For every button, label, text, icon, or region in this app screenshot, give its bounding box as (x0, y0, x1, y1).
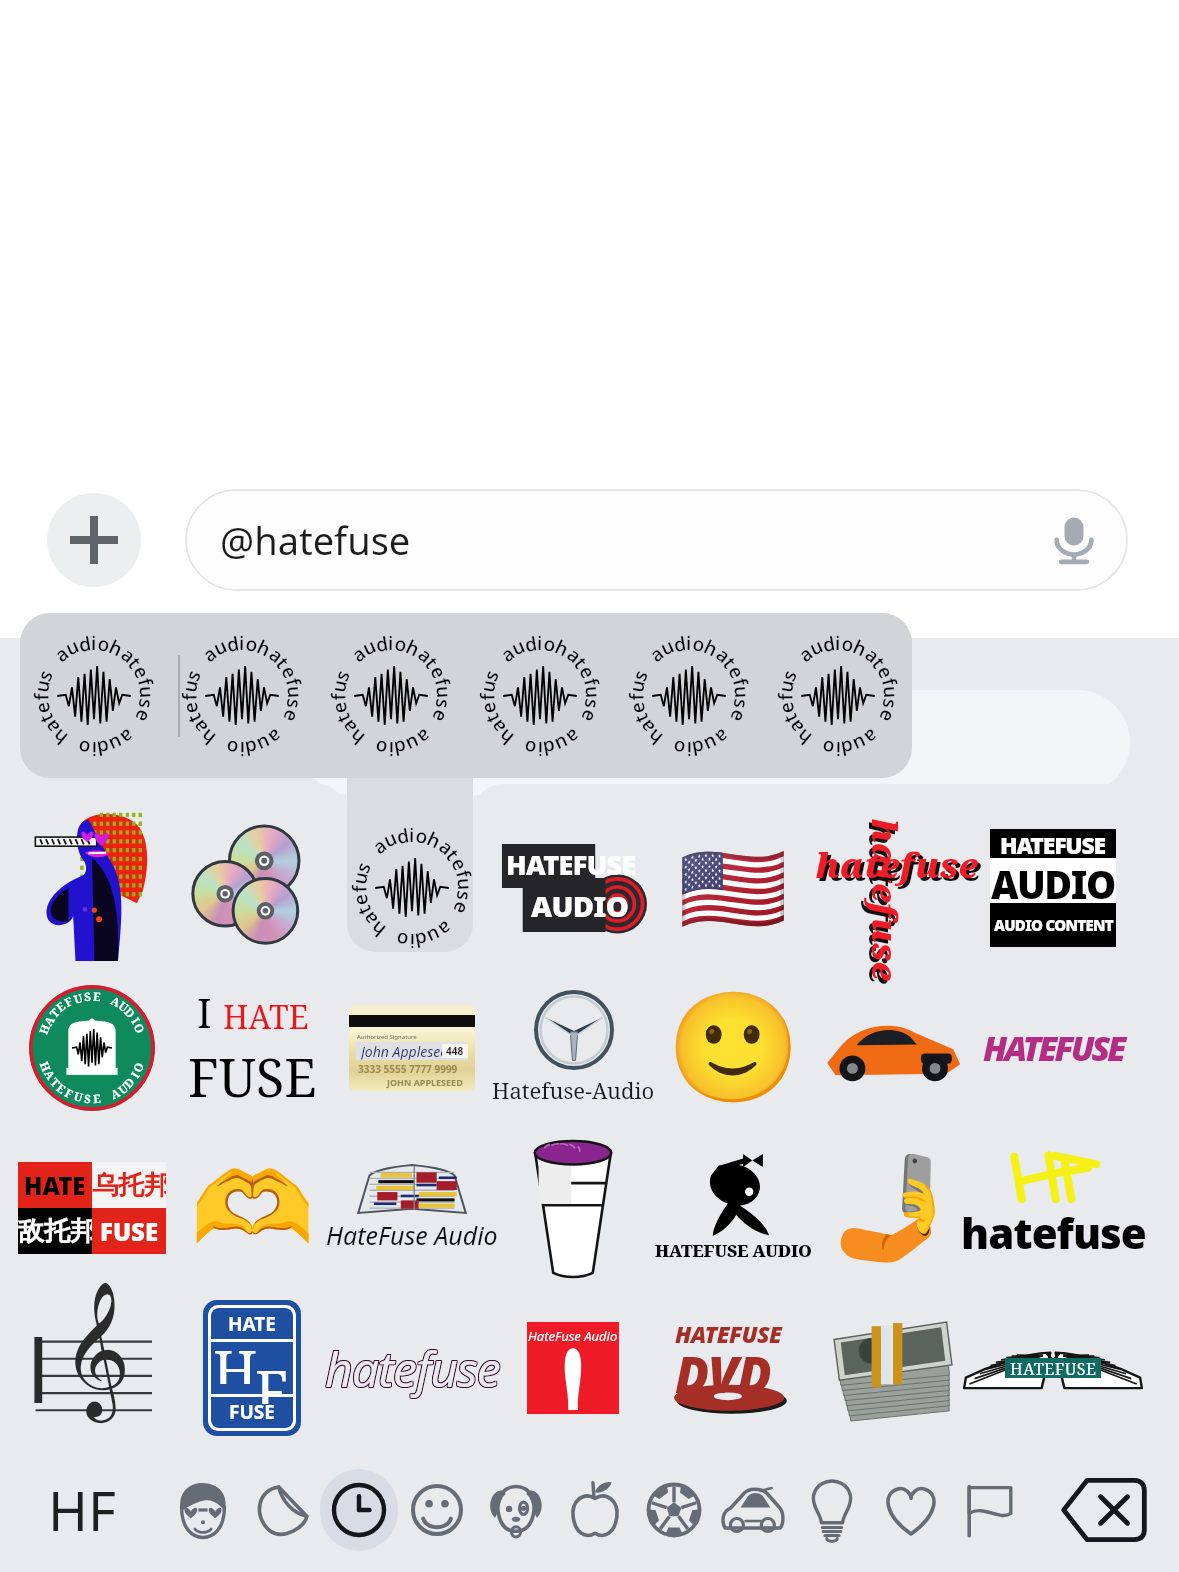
staticText: u (849, 730, 871, 758)
staticText: u (551, 730, 573, 758)
button[interactable]: Sticker (172, 968, 332, 1128)
staticText: f (28, 693, 54, 701)
button[interactable]: Sticker (12, 808, 172, 968)
button[interactable]: Recently used emoji (164, 1448, 242, 1572)
button[interactable]: Animals (476, 1448, 555, 1572)
button[interactable]: Shapes (242, 1448, 320, 1572)
staticText: 🙂 (666, 985, 801, 1112)
staticText: d (541, 734, 557, 762)
button[interactable]: Sticker (813, 1128, 973, 1288)
button[interactable]: Sticker (493, 1288, 653, 1448)
button[interactable]: Backspace (1029, 1448, 1179, 1572)
staticText: s (775, 665, 803, 685)
staticText: I (127, 1015, 144, 1027)
staticText: FUSE (229, 1399, 275, 1425)
staticText: hatefuse (324, 1336, 499, 1401)
staticText: h (105, 634, 127, 662)
staticText: o (96, 630, 112, 658)
button[interactable]: Sticker (973, 1128, 1133, 1288)
button[interactable]: Sticker (813, 808, 973, 968)
staticText: A (108, 1085, 123, 1103)
button[interactable]: Suggested sticker (763, 613, 912, 778)
staticText: F (62, 1085, 76, 1103)
staticText: h (791, 723, 817, 751)
button[interactable]: Suggested sticker (168, 613, 316, 778)
staticText: u (134, 685, 160, 699)
staticText: s (280, 697, 308, 711)
staticText: HATEFUSE AUDIO (655, 1239, 812, 1262)
button[interactable]: Suggested sticker (614, 613, 763, 778)
button[interactable]: Objects (792, 1448, 871, 1572)
staticText: hatefuse (325, 1335, 500, 1400)
staticText: d (672, 630, 688, 658)
staticText: f (772, 693, 798, 701)
button[interactable]: Sticker (973, 808, 1133, 968)
button[interactable]: Activities (634, 1448, 713, 1572)
staticText: f (346, 885, 372, 893)
staticText: a (115, 723, 140, 751)
staticText: H (36, 1021, 54, 1037)
button[interactable]: Suggested sticker (316, 613, 465, 778)
button[interactable]: Sticker (493, 808, 653, 968)
button[interactable]: Sticker (172, 808, 332, 968)
staticText: o (414, 822, 430, 850)
staticText: U (115, 1080, 132, 1098)
button[interactable]: Flags (950, 1448, 1029, 1572)
button[interactable]: Travel and places (713, 1448, 792, 1572)
button[interactable]: Sticker (332, 808, 492, 968)
staticText: HATEFUSE (1000, 829, 1106, 858)
button[interactable]: @hatefuse (185, 489, 1128, 591)
staticText: o (76, 734, 92, 762)
button[interactable]: Food and drink (555, 1448, 634, 1572)
button[interactable]: HF (0, 1448, 164, 1572)
staticText: d (690, 734, 706, 762)
button[interactable]: Sticker (12, 1128, 172, 1288)
staticText: a (38, 715, 65, 739)
staticText: A (40, 1067, 59, 1083)
button[interactable]: Sticker (12, 1288, 172, 1448)
staticText: 🤳 (829, 1148, 957, 1268)
button[interactable]: Voice search (1046, 512, 1102, 568)
staticText: h (253, 634, 275, 662)
staticText: T (46, 1005, 64, 1021)
staticText: hatefuse (326, 1335, 501, 1400)
button[interactable]: Sticker (973, 968, 1133, 1128)
staticText: o (373, 734, 389, 762)
button[interactable]: Sticker (332, 1288, 492, 1448)
staticText: h (195, 723, 221, 751)
button[interactable]: Sticker (973, 1288, 1133, 1448)
staticText: U (115, 998, 132, 1016)
button[interactable]: Sticker (813, 1288, 973, 1448)
staticText: u (282, 685, 308, 699)
staticText: E (92, 1091, 102, 1107)
button[interactable]: Sticker (653, 1288, 813, 1448)
button[interactable]: Suggested sticker (20, 613, 168, 778)
staticText: h (402, 634, 424, 662)
staticText: u (325, 678, 353, 694)
staticText: 敌托邦 (18, 1215, 92, 1248)
button[interactable]: Sticker (493, 968, 653, 1128)
staticText: u (474, 678, 502, 694)
button[interactable]: Smileys (398, 1448, 476, 1572)
button[interactable]: Sticker (172, 1288, 332, 1448)
button[interactable]: Sticker (332, 1128, 492, 1288)
button[interactable]: Sticker (493, 1128, 653, 1288)
button[interactable]: Suggested sticker (465, 613, 614, 778)
button[interactable]: Sticker (172, 1128, 332, 1288)
staticText: a (49, 640, 74, 668)
staticText: u (176, 678, 204, 694)
button[interactable]: Symbols (871, 1448, 950, 1572)
staticText: a (561, 723, 586, 751)
staticText: u (346, 870, 374, 886)
button[interactable]: Recent (320, 1448, 398, 1572)
button[interactable]: Add sticker (47, 493, 141, 587)
button[interactable]: Sticker (12, 968, 172, 1128)
staticText: h (493, 723, 519, 751)
button[interactable]: Sticker (813, 968, 973, 1128)
staticText: e (871, 661, 900, 683)
button[interactable]: Sticker (653, 968, 813, 1128)
button[interactable]: Sticker (653, 1128, 813, 1288)
button[interactable]: Sticker (653, 808, 813, 968)
staticText: s (429, 697, 457, 711)
button[interactable]: Sticker (332, 968, 492, 1128)
